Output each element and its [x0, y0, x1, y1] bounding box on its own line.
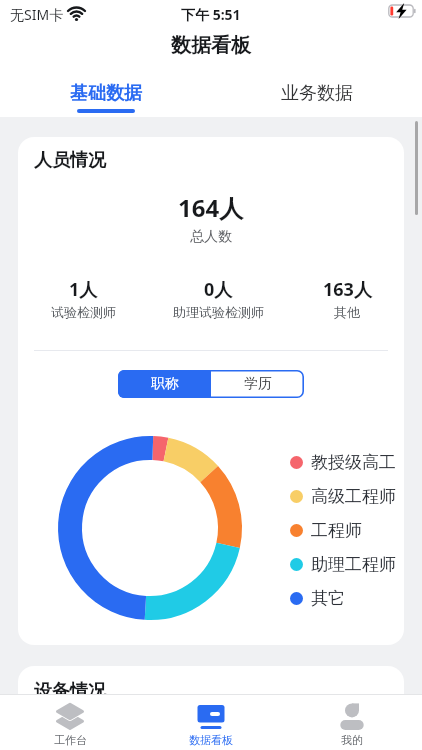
button[interactable]: 我的 [281, 695, 422, 750]
button[interactable]: 学历 [211, 370, 304, 398]
staticText: 数据看板 [189, 733, 233, 747]
staticText: 人员情况 [34, 149, 106, 172]
button[interactable]: 工作台 [0, 695, 140, 750]
staticText: 其他 [334, 304, 360, 320]
staticText: 总人数 [190, 228, 232, 246]
staticText: 数据看板 [171, 33, 251, 58]
staticText: 基础数据 [70, 82, 142, 105]
staticText: 1人 [69, 277, 98, 302]
staticText: 164人 [178, 191, 244, 224]
staticText: 其它 [311, 588, 345, 609]
staticText: 试验检测师 [51, 304, 116, 320]
staticText: 教授级高工 [311, 452, 396, 473]
staticText: 0人 [204, 277, 233, 302]
staticText: 助理工程师 [311, 554, 396, 575]
button[interactable]: 基础数据 [0, 62, 211, 117]
button[interactable]: 数据看板 [140, 695, 281, 750]
staticText: 设备情况 [34, 680, 106, 703]
staticText: 高级工程师 [311, 486, 396, 507]
staticText: 工作台 [54, 733, 87, 747]
staticText: 业务数据 [281, 82, 353, 105]
button[interactable]: 职称 [118, 370, 211, 398]
staticText: 助理试验检测师 [173, 304, 264, 320]
staticText: 学历 [244, 375, 272, 393]
staticText: 163人 [323, 277, 372, 302]
staticText: 无SIM卡 [10, 5, 64, 24]
button[interactable]: 业务数据 [211, 62, 422, 117]
staticText: 下午 5:51 [181, 5, 241, 24]
staticText: 工程师 [311, 520, 362, 541]
staticText: 职称 [151, 375, 179, 393]
staticText: 我的 [341, 733, 363, 747]
